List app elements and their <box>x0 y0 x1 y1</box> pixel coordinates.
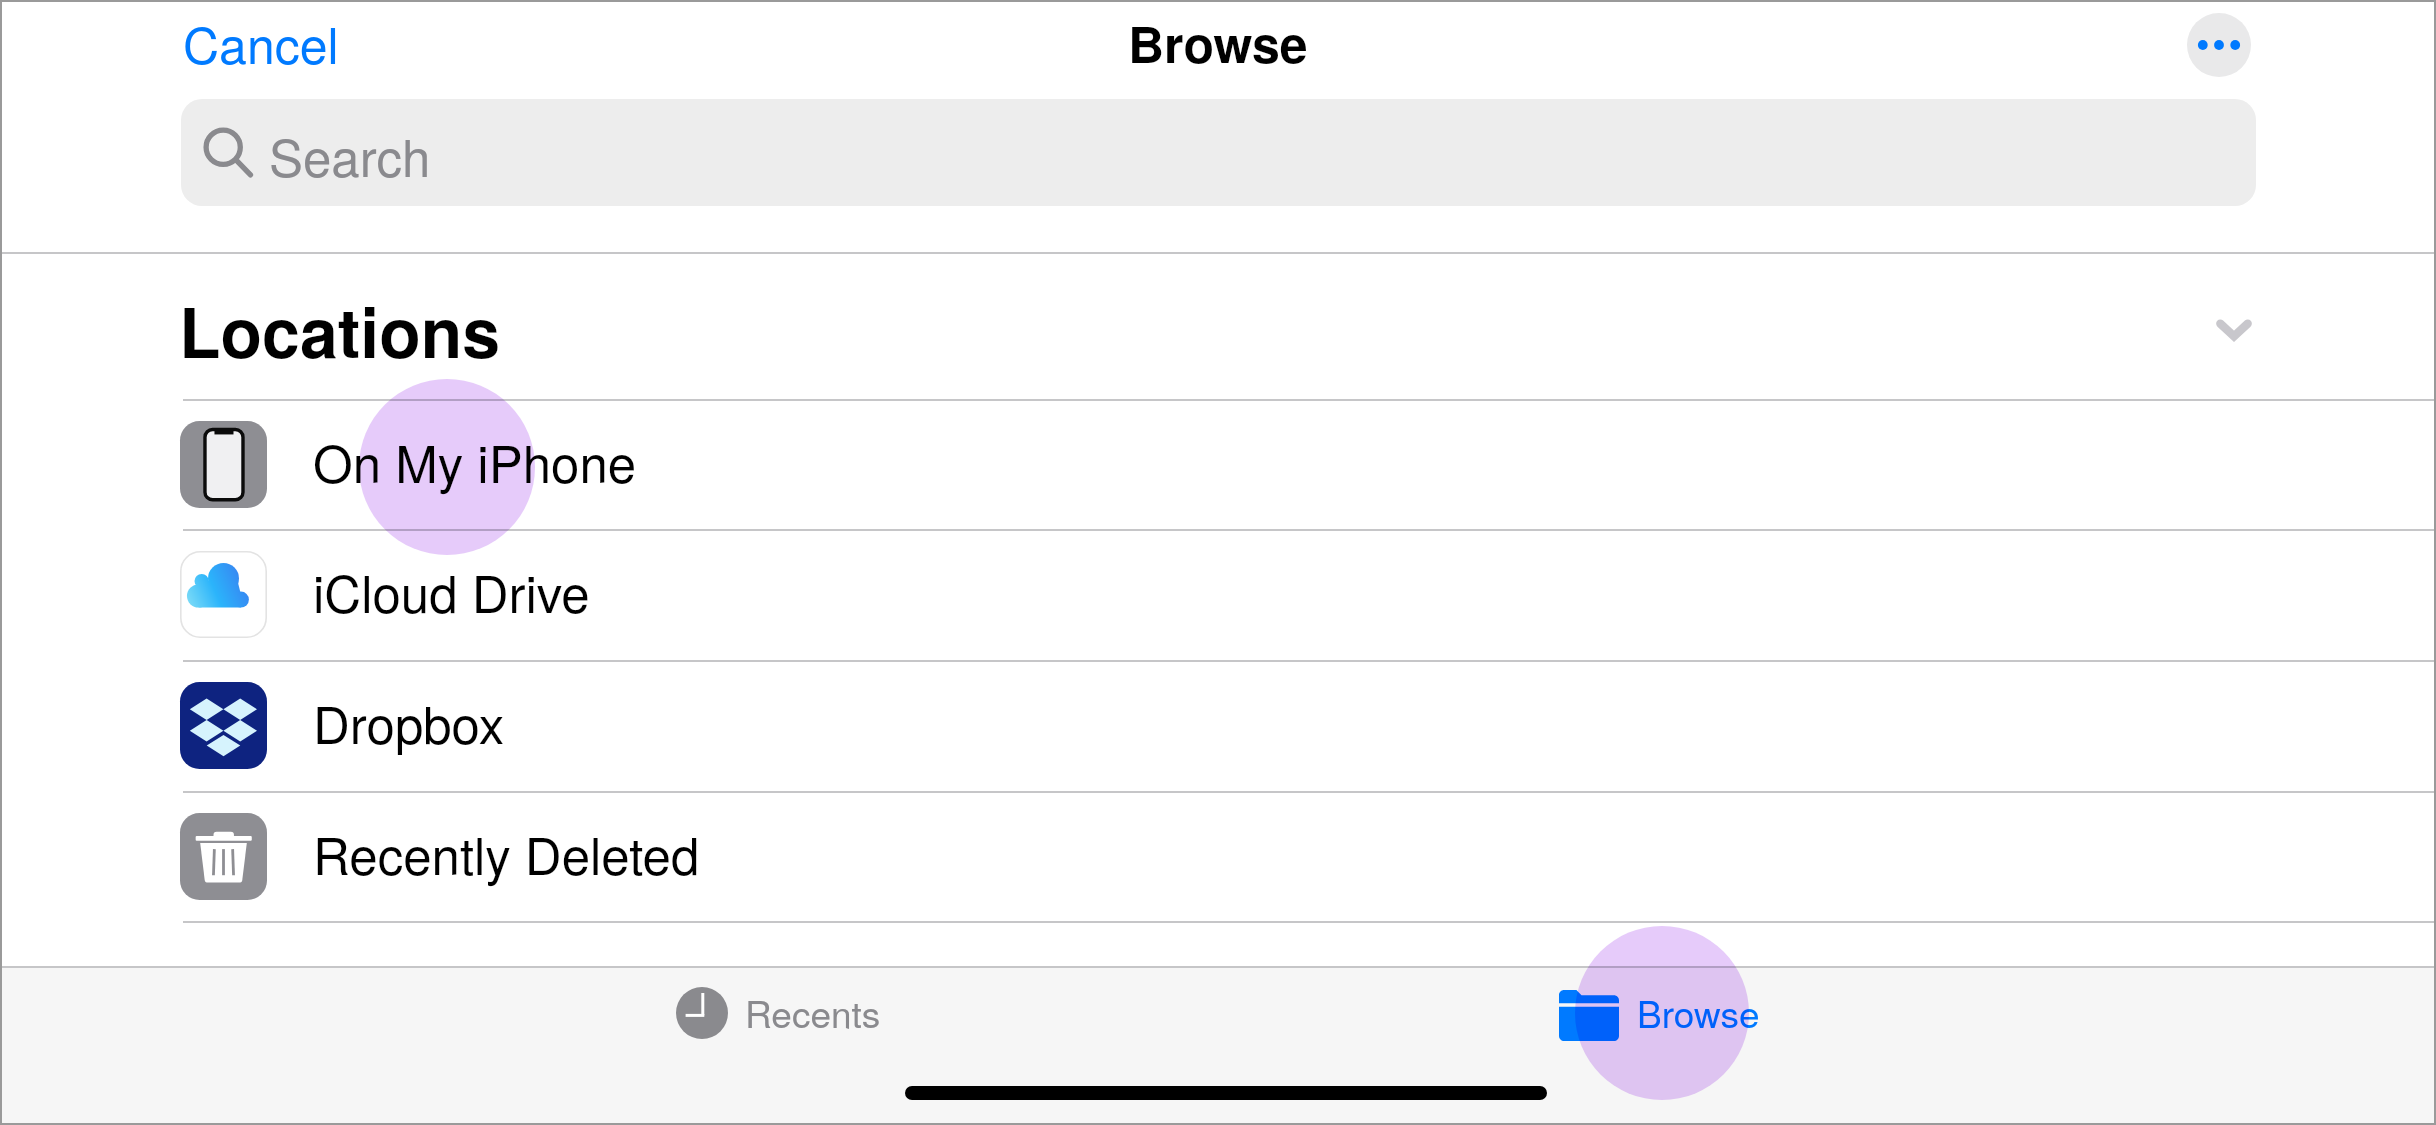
button[interactable]: Recents <box>2 968 1218 1093</box>
button[interactable]: On My iPhone <box>0 399 2436 529</box>
staticText: On My iPhone <box>313 424 637 497</box>
staticText: Dropbox <box>313 685 505 758</box>
staticText: Cancel <box>183 7 339 79</box>
button[interactable]: iCloud Drive <box>0 529 2436 659</box>
button[interactable]: Cancel <box>183 4 373 82</box>
button[interactable]: Browse <box>1218 968 2434 1093</box>
button[interactable]: Recently Deleted <box>0 791 2436 921</box>
staticText: Browse <box>1637 986 1760 1039</box>
button[interactable]: Collapse Locations <box>2186 282 2282 378</box>
button[interactable]: More options <box>2187 13 2251 77</box>
staticText: Search <box>269 118 431 191</box>
staticText: Browse <box>1128 7 1308 79</box>
button[interactable]: Locations <box>179 275 509 365</box>
button[interactable]: Search <box>181 99 2256 206</box>
staticText: Locations <box>179 281 501 371</box>
staticText: Recents <box>745 986 881 1039</box>
staticText: iCloud Drive <box>313 554 590 627</box>
staticText: Recently Deleted <box>313 816 700 889</box>
button[interactable]: Dropbox <box>0 660 2436 790</box>
